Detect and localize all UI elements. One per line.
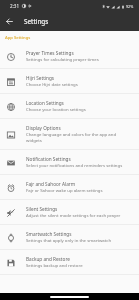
button[interactable]: Backup and Restore [0,250,139,275]
button[interactable]: Notification Settings [0,150,139,175]
button[interactable]: Smartwatch Settings [0,225,139,250]
button[interactable]: Hijri Settings [0,69,139,94]
staticText: App Settings [5,35,31,41]
staticText: Settings for calculating prayer times [26,56,99,62]
staticText: 92% [126,4,134,9]
staticText: Select your notifications and reminders … [26,162,123,168]
staticText: Display Options [26,125,61,131]
button[interactable]: Back [3,15,16,28]
staticText: Smartwatch Settings [26,231,72,237]
button[interactable]: Fajr and Sahoor Alarm [0,175,139,200]
button[interactable]: Prayer Times Settings [0,44,139,69]
staticText: Adjust the silent mode settings for each… [26,212,121,218]
staticText: Choose your location settings [26,106,86,112]
staticText: Change language and colors for the app a… [26,131,128,143]
staticText: Prayer Times Settings [26,50,74,56]
staticText: Location Settings [26,100,64,106]
staticText: Fajr and Sahoor Alarm [26,181,76,187]
button[interactable]: Location Settings [0,94,139,119]
staticText: Settings backup and restore [26,262,83,268]
staticText: Settings that apply only in the smartwat… [26,237,112,243]
button[interactable]: Display Options [0,119,139,150]
staticText: Fajr or Sahoor wake up alarm settings [26,187,103,193]
staticText: Choose Hijri date settings [26,81,78,87]
staticText: Backup and Restore [26,256,70,262]
staticText: 2:31 [10,3,20,9]
staticText: Hijri Settings [26,75,55,81]
staticText: Notification Settings [26,156,71,162]
staticText: Settings [24,17,49,26]
button[interactable]: Silent Settings [0,200,139,225]
staticText: Silent Settings [26,206,58,212]
